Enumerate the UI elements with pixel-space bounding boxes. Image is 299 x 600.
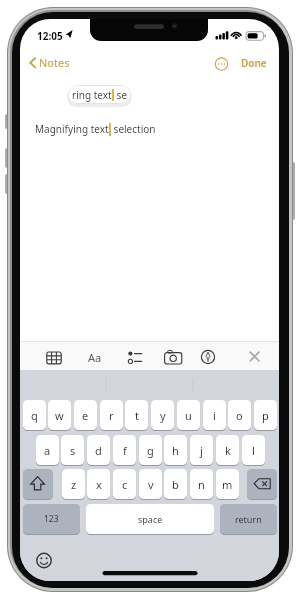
button[interactable]: a — [36, 435, 59, 465]
button[interactable]: m — [216, 469, 239, 499]
button[interactable]: Done — [236, 53, 272, 73]
staticText: q — [31, 408, 38, 423]
button[interactable]: i — [203, 400, 226, 430]
staticText: b — [172, 477, 179, 492]
button[interactable]: x — [87, 469, 110, 499]
staticText: o — [236, 408, 243, 423]
button[interactable] — [123, 343, 149, 368]
staticText: c — [122, 477, 128, 492]
button[interactable]: f — [113, 435, 136, 465]
button[interactable]: q — [23, 400, 46, 430]
button[interactable]: u — [177, 400, 200, 430]
staticText: d — [95, 443, 102, 458]
staticText: x — [96, 477, 102, 492]
staticText: r — [109, 408, 114, 423]
staticText: space — [138, 513, 163, 525]
button[interactable]: k — [216, 435, 239, 465]
button[interactable] — [23, 469, 53, 499]
staticText: return — [235, 513, 262, 525]
staticText: 123 — [44, 513, 59, 525]
staticText: v — [148, 477, 154, 492]
button[interactable]: z — [62, 469, 85, 499]
button[interactable] — [41, 343, 67, 368]
button[interactable]: space — [86, 504, 214, 534]
button[interactable]: 123 — [23, 504, 80, 534]
staticText: z — [71, 477, 77, 492]
staticText: Done — [241, 56, 267, 70]
staticText: n — [198, 477, 205, 492]
staticText: g — [147, 443, 154, 458]
staticText: selection — [111, 122, 156, 136]
button[interactable]: g — [139, 435, 162, 465]
staticText: se — [114, 88, 128, 102]
button[interactable] — [82, 343, 108, 368]
staticText: e — [82, 408, 89, 423]
staticText: l — [252, 443, 255, 458]
button[interactable]: t — [125, 400, 148, 430]
button[interactable]: c — [113, 469, 136, 499]
button[interactable]: Notes — [26, 53, 76, 73]
button[interactable]: p — [254, 400, 277, 430]
button[interactable] — [247, 469, 277, 499]
button[interactable] — [212, 54, 231, 73]
button[interactable]: b — [164, 469, 187, 499]
staticText: ring text — [72, 88, 112, 102]
button[interactable] — [160, 343, 186, 368]
staticText: p — [262, 408, 269, 423]
button[interactable]: s — [61, 435, 84, 465]
button[interactable]: o — [228, 400, 251, 430]
staticText: Magnifying text — [35, 122, 109, 136]
staticText: h — [172, 443, 179, 458]
button[interactable]: y — [151, 400, 174, 430]
staticText: y — [160, 408, 166, 423]
staticText: a — [44, 443, 51, 458]
staticText: Notes — [39, 55, 70, 70]
button[interactable]: h — [164, 435, 187, 465]
button[interactable]: e — [74, 400, 97, 430]
staticText: j — [200, 443, 203, 458]
staticText: w — [55, 408, 64, 423]
staticText: t — [135, 408, 139, 423]
staticText: i — [213, 408, 216, 423]
button[interactable] — [242, 343, 268, 368]
staticText: u — [185, 408, 192, 423]
button[interactable] — [195, 343, 221, 368]
staticText: f — [123, 443, 127, 458]
button[interactable]: r — [100, 400, 123, 430]
button[interactable]: return — [220, 504, 277, 534]
button[interactable]: j — [190, 435, 213, 465]
staticText: k — [225, 443, 231, 458]
staticText: Aa — [88, 350, 102, 365]
staticText: 12:05 — [37, 29, 63, 43]
staticText: m — [222, 477, 233, 492]
button[interactable]: l — [242, 435, 265, 465]
button[interactable]: d — [87, 435, 110, 465]
button[interactable]: w — [48, 400, 71, 430]
staticText: s — [70, 443, 76, 458]
button[interactable]: n — [190, 469, 213, 499]
button[interactable] — [33, 549, 55, 571]
button[interactable]: v — [139, 469, 162, 499]
